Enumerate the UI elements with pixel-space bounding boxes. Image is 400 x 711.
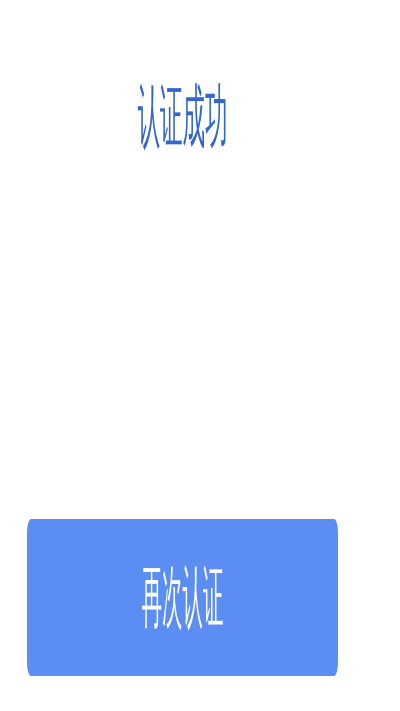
button[interactable]: 再次认证 <box>27 519 338 676</box>
staticText: 认证成功 <box>44 74 320 160</box>
staticText: 再次认证 <box>46 556 318 639</box>
